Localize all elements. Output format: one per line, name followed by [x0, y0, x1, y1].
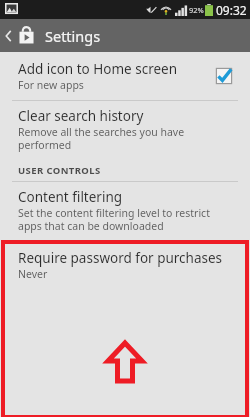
staticText: Content filtering [18, 188, 123, 206]
staticText: Never [18, 267, 48, 281]
button[interactable]: Content filtering [0, 182, 250, 237]
staticText: Set the content filtering level to restr… [18, 206, 228, 233]
button[interactable]: Require password for purchases [3, 242, 247, 288]
button[interactable]: Clear search history [0, 101, 250, 156]
button[interactable]: Navigate up [0, 19, 250, 52]
staticText: Add icon to Home screen [18, 60, 178, 78]
staticText: For new apps [18, 78, 84, 92]
button[interactable]: Add icon to Home screen [0, 57, 250, 96]
staticText: Settings [45, 26, 101, 46]
button[interactable]: Add icon to Home screen toggle [214, 66, 234, 86]
staticText: Clear search history [18, 107, 144, 125]
staticText: 09:32 [216, 2, 247, 18]
other: Navigate up [4, 28, 13, 44]
staticText: 92% [189, 5, 204, 15]
staticText: USER CONTROLS [18, 164, 101, 177]
staticText: Require password for purchases [18, 249, 223, 267]
staticText: Remove all the searches you have perform… [18, 125, 226, 152]
